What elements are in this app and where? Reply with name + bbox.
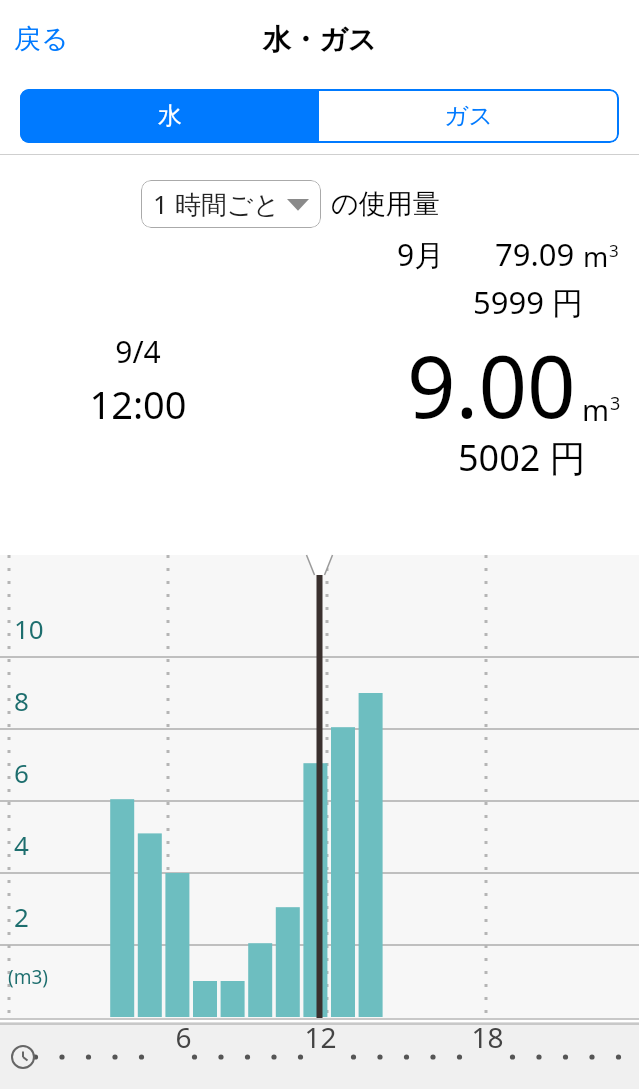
staticText: 2 xyxy=(14,899,29,934)
staticText: 戻る xyxy=(14,22,69,56)
staticText: m xyxy=(583,238,609,275)
staticText: 6 xyxy=(14,755,29,790)
button[interactable]: 1 時間ごと xyxy=(141,180,321,228)
staticText: (m3) xyxy=(8,964,49,990)
staticText: m xyxy=(582,390,610,429)
button[interactable]: 水 xyxy=(20,89,319,143)
staticText: 9/4 xyxy=(115,331,161,372)
staticText: 水 xyxy=(158,101,182,131)
staticText: 3 xyxy=(610,391,621,416)
staticText: 1 時間ごと xyxy=(153,186,280,222)
staticText: 8 xyxy=(14,683,29,718)
staticText: 9月 xyxy=(397,234,445,275)
button[interactable]: ガス xyxy=(319,89,619,143)
staticText: ガス xyxy=(444,101,494,131)
staticText: 水・ガス xyxy=(263,22,377,57)
staticText: 3 xyxy=(609,239,619,262)
staticText: 6 xyxy=(175,1018,192,1056)
staticText: 18 xyxy=(471,1018,504,1056)
staticText: 9.00 xyxy=(407,327,576,443)
button[interactable]: 戻る xyxy=(6,16,77,62)
staticText: 79.09 xyxy=(495,233,575,275)
staticText: の使用量 xyxy=(331,187,440,221)
staticText: 5002 円 xyxy=(458,433,586,482)
staticText: 10 xyxy=(14,611,44,646)
staticText: 4 xyxy=(14,827,29,862)
staticText: 12 xyxy=(304,1018,337,1056)
staticText: 5999 円 xyxy=(473,281,583,323)
staticText: 12:00 xyxy=(89,378,187,430)
